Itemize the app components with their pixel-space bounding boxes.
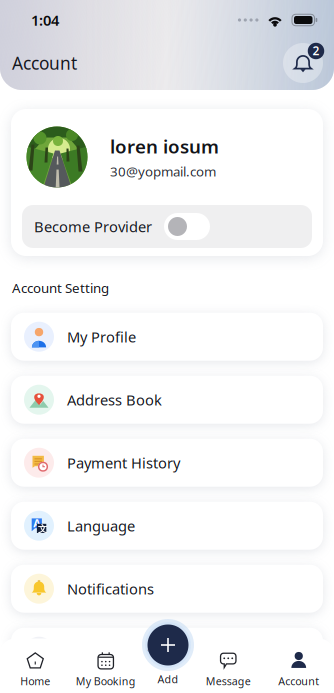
staticText: My Profile bbox=[67, 327, 136, 346]
button[interactable]: Account bbox=[263, 645, 334, 693]
staticText: 30@yopmail.com bbox=[110, 162, 216, 180]
staticText: Add bbox=[157, 672, 178, 686]
button[interactable]: Payment History bbox=[11, 439, 323, 487]
staticText: loren iosum bbox=[110, 134, 219, 159]
staticText: Home bbox=[20, 674, 50, 688]
button[interactable]: Become Provider bbox=[164, 213, 210, 240]
button[interactable]: Terms & Conditions bbox=[11, 628, 323, 676]
button[interactable]: My Profile bbox=[11, 313, 323, 361]
button[interactable]: My Booking bbox=[70, 645, 141, 693]
button[interactable]: Message bbox=[193, 645, 263, 693]
staticText: My Booking bbox=[76, 674, 136, 688]
staticText: Language bbox=[67, 516, 135, 535]
button[interactable]: Home bbox=[0, 645, 70, 693]
button[interactable]: Notifications bbox=[281, 41, 325, 85]
staticText: Account bbox=[12, 51, 77, 74]
staticText: Payment History bbox=[67, 453, 180, 472]
button[interactable]: Address Book bbox=[11, 376, 323, 424]
staticText: Message bbox=[206, 674, 251, 688]
staticText: A bbox=[33, 516, 40, 530]
staticText: 1:04 bbox=[31, 10, 59, 30]
staticText: Account Setting bbox=[12, 279, 109, 297]
button[interactable]: Add bbox=[142, 619, 194, 671]
staticText: 2 bbox=[312, 42, 319, 58]
button[interactable]: A bbox=[11, 502, 323, 550]
staticText: Address Book bbox=[67, 390, 162, 409]
staticText: Become Provider bbox=[34, 217, 152, 236]
staticText: 文 bbox=[38, 523, 47, 535]
staticText: Terms & Conditions bbox=[67, 642, 202, 661]
button[interactable]: Notifications bbox=[11, 565, 323, 613]
staticText: Notifications bbox=[67, 579, 154, 598]
staticText: Account bbox=[278, 674, 319, 688]
